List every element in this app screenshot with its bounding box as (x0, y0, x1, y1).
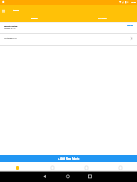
staticText: Current Location (4, 25, 18, 27)
staticText: LOCATIONS (98, 17, 107, 19)
staticText: CHANGE (127, 25, 133, 27)
button[interactable]: Open navigation menu (0, 5, 7, 16)
button[interactable]: Current Location (0, 23, 137, 33)
staticText: FABRICS (31, 17, 38, 19)
staticText: Menu (13, 9, 20, 12)
button[interactable]: + Add New Fabric (0, 155, 137, 162)
staticText: Untagged: 48 (4, 37, 17, 40)
staticText: 10:30 (131, 1, 136, 4)
staticText: LOCATIONS (98, 17, 107, 19)
staticText: Untagged: 48 - 1/4 (4, 28, 16, 30)
staticText: FABRICS (31, 17, 38, 19)
button[interactable]: Profile (103, 165, 137, 170)
staticText: + Add New Fabric (58, 157, 80, 161)
button[interactable]: LOCATIONS (68, 16, 137, 20)
button[interactable]: Untagged: 48 (0, 34, 137, 45)
staticText: Menu (13, 9, 20, 12)
staticText: 10:30 (131, 1, 136, 4)
button[interactable]: Projects (35, 165, 69, 170)
staticText: Current Location (4, 25, 18, 27)
staticText: Untagged: 48 - 1/4 (4, 28, 16, 30)
button[interactable]: FABRICS (0, 16, 68, 20)
button[interactable]: CHANGE (126, 23, 134, 28)
button[interactable]: Camera (69, 165, 103, 170)
button[interactable]: Fabrics (0, 165, 35, 170)
staticText: CHANGE (127, 25, 133, 27)
staticText: LOCATIONS (98, 17, 107, 19)
staticText: CHANGE (127, 25, 133, 27)
staticText: FABRICS (31, 17, 38, 19)
staticText: + Add New Fabric (58, 157, 80, 161)
